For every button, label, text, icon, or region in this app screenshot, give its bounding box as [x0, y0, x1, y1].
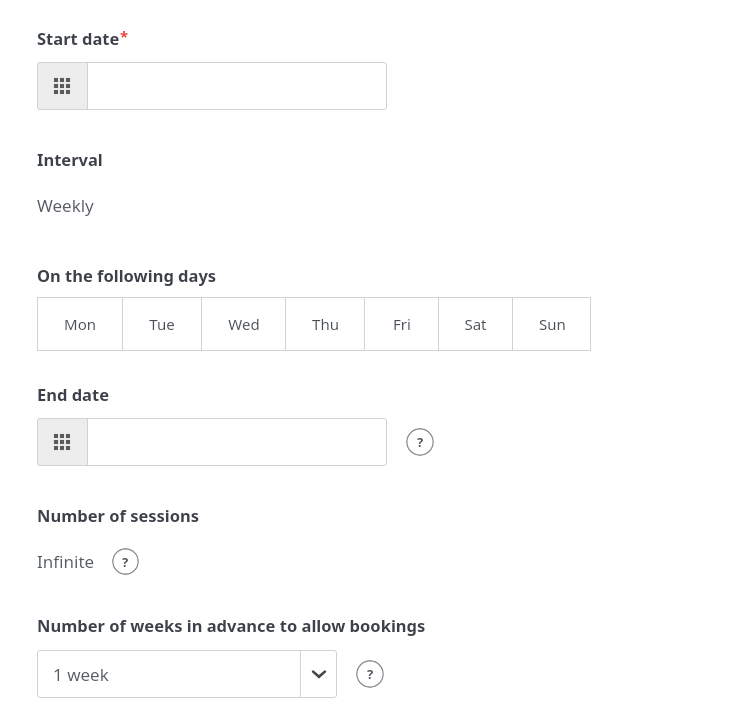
button[interactable]: Fri — [365, 297, 438, 351]
button[interactable]: End date picker — [37, 418, 387, 466]
staticText: Start date — [37, 27, 120, 49]
button[interactable]: Mon — [37, 297, 122, 351]
staticText: Number of weeks in advance to allow book… — [37, 614, 426, 636]
button[interactable]: Help about end date — [406, 428, 434, 456]
staticText: Sun — [539, 314, 566, 334]
staticText: ? — [367, 665, 374, 683]
staticText: Infinite — [37, 550, 95, 573]
button[interactable]: Sun — [513, 297, 591, 351]
button[interactable]: Thu — [286, 297, 364, 351]
button[interactable]: Help about weeks in advance — [356, 660, 384, 688]
staticText: * — [120, 26, 129, 46]
staticText: Tue — [149, 314, 175, 334]
button[interactable]: Wed — [202, 297, 285, 351]
staticText: Fri — [393, 314, 411, 334]
staticText: Weekly — [37, 194, 94, 217]
button[interactable]: 1 week — [37, 650, 337, 698]
staticText: Thu — [312, 314, 339, 334]
staticText: ? — [417, 433, 424, 451]
staticText: On the following days — [37, 264, 217, 286]
button[interactable]: Start date picker — [37, 62, 387, 110]
staticText: Mon — [64, 314, 96, 334]
button[interactable]: Tue — [123, 297, 201, 351]
staticText: 1 week — [53, 663, 109, 686]
staticText: ? — [122, 553, 129, 571]
button[interactable]: Help about number of sessions — [112, 548, 139, 575]
staticText: Number of sessions — [37, 504, 200, 526]
staticText: Sat — [464, 314, 487, 334]
staticText: End date — [37, 383, 110, 405]
button[interactable]: Sat — [439, 297, 512, 351]
staticText: Interval — [37, 148, 103, 170]
staticText: Wed — [228, 314, 260, 334]
